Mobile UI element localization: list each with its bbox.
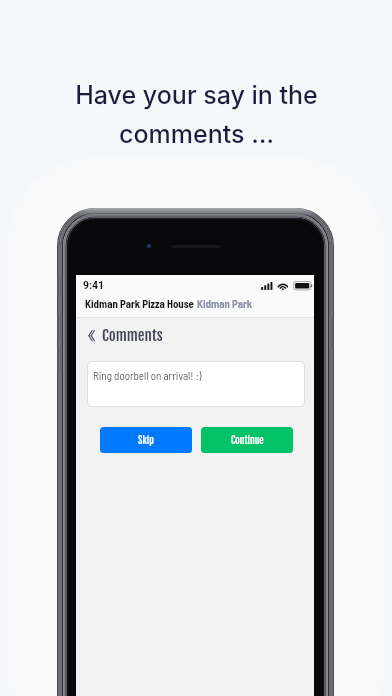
staticText: Have your say in the comments … [75,80,318,149]
staticText: Continue [231,434,264,446]
button[interactable]: Back [85,328,99,342]
staticText: Kidman Park [197,297,253,310]
staticText: Comments [102,326,163,345]
staticText: Skip [138,434,154,446]
button[interactable]: Continue [201,427,293,453]
button[interactable]: Ring doorbell on arrival! :) [87,361,305,407]
button[interactable]: Skip [100,427,192,453]
staticText: 9:41 [83,279,105,291]
staticText: Ring doorbell on arrival! :) [93,369,202,382]
staticText: Kidman Park Pizza House [85,297,194,310]
